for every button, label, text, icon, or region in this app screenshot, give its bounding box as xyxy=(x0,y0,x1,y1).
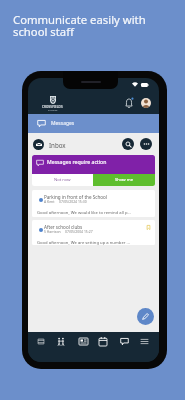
staticText: Parking in front of the School xyxy=(44,194,107,200)
button[interactable]: Not now xyxy=(32,174,93,186)
button[interactable]: Inbox xyxy=(33,139,66,150)
staticText: A Kent xyxy=(44,199,55,204)
button[interactable]: Profile xyxy=(141,98,151,108)
staticText: 17:52 xyxy=(67,81,82,88)
staticText: 07/05/2024 15:30 xyxy=(59,199,87,204)
staticText: S Harrison xyxy=(44,229,61,234)
staticText: Communicate easily with school staff xyxy=(13,12,146,39)
button[interactable]: Dashboard xyxy=(31,331,51,351)
staticText: Messages require action xyxy=(47,158,107,165)
button[interactable]: Menu xyxy=(134,331,154,351)
staticText: Good afternoon, We would like to remind … xyxy=(37,210,131,216)
button[interactable]: Students xyxy=(51,331,71,351)
staticText: Messages xyxy=(51,120,75,127)
button[interactable]: Parking in front of the School xyxy=(32,190,155,217)
staticText: SCHOOL xyxy=(48,109,58,112)
button[interactable]: Calendar xyxy=(93,331,113,351)
button[interactable]: Messages xyxy=(28,114,159,133)
staticText: Show me xyxy=(115,177,133,183)
staticText: Good afternoon, We are setting up a numb… xyxy=(37,240,130,245)
staticText: CROSSFIELDS xyxy=(42,105,63,109)
button[interactable]: Notifications xyxy=(122,96,135,109)
button[interactable]: More options xyxy=(140,138,152,150)
button[interactable]: Compose message xyxy=(137,308,154,325)
staticText: Not now xyxy=(54,177,71,183)
staticText: 07/05/2004 15:27 xyxy=(65,229,93,234)
button[interactable]: Payments xyxy=(73,331,93,351)
staticText: Inbox xyxy=(49,141,66,149)
button[interactable]: Messages xyxy=(114,331,134,351)
staticText: After school clubs xyxy=(44,224,83,230)
button[interactable]: After school clubs xyxy=(32,220,155,245)
button[interactable]: Show me xyxy=(93,174,155,186)
button[interactable]: Search xyxy=(122,138,134,150)
